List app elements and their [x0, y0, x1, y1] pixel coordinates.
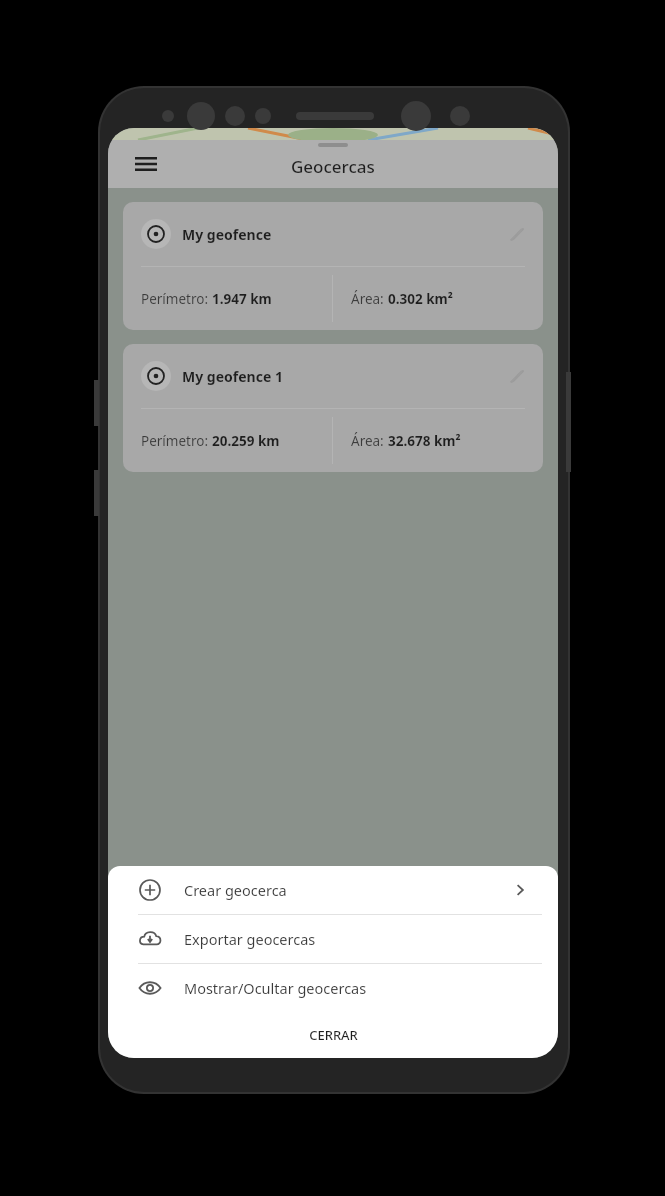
staticText: My geofence — [182, 225, 272, 244]
staticText: Perímetro: — [141, 432, 212, 450]
staticText: Área: — [351, 290, 388, 308]
staticText: My geofence 1 — [182, 367, 283, 386]
button[interactable]: Mostrar/Ocultar geocercas — [108, 964, 558, 1012]
button[interactable]: Crear geocerca — [108, 866, 558, 914]
staticText: 1.947 km — [212, 290, 272, 308]
staticText: Perímetro: — [141, 290, 212, 308]
button[interactable]: My geofence 1 — [123, 344, 543, 472]
staticText: 0.302 km² — [388, 290, 453, 308]
button[interactable]: My geofence — [123, 202, 543, 330]
staticText: 20.259 km — [212, 432, 280, 450]
button[interactable]: Exportar geocercas — [108, 915, 558, 963]
button[interactable]: CERRAR — [108, 1012, 558, 1058]
staticText: Exportar geocercas — [184, 929, 316, 949]
button[interactable]: Menu — [126, 144, 166, 184]
staticText: Área: — [351, 432, 388, 450]
staticText: 32.678 km² — [388, 432, 461, 450]
staticText: Mostrar/Ocultar geocercas — [184, 978, 367, 998]
staticText: Geocercas — [291, 155, 375, 178]
staticText: CERRAR — [309, 1026, 358, 1044]
staticText: Crear geocerca — [184, 880, 287, 900]
